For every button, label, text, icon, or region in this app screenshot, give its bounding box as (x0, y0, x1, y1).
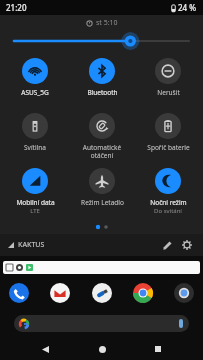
staticText: Režim Letadlo (81, 198, 124, 207)
button[interactable]: Mobilní data (4, 165, 66, 215)
staticText: LTE (30, 207, 40, 215)
button[interactable]: Chrome (132, 282, 154, 304)
button[interactable]: Edit tiles (159, 237, 175, 253)
staticText: Automatické otáčení (71, 143, 133, 160)
staticText: st 5:10 (96, 18, 118, 28)
button[interactable]: Bluetooth (71, 55, 133, 97)
staticText: Mobilní data (16, 198, 55, 207)
staticText: Svítilna (24, 143, 46, 152)
button[interactable]: Brightness (14, 31, 189, 51)
staticText: Noční režim (150, 198, 187, 207)
button[interactable]: Home (90, 338, 114, 360)
staticText: KAKTUS (18, 240, 45, 250)
staticText: ASUS_5G (21, 88, 49, 97)
button[interactable]: Back (33, 338, 57, 360)
button[interactable]: Noční režim (137, 165, 199, 215)
staticText: 24 % (178, 2, 197, 13)
button[interactable]: Automatické otáčení (71, 110, 133, 160)
button[interactable]: Spořič baterie (137, 110, 199, 152)
button[interactable]: Phone (8, 282, 30, 304)
staticText: Spořič baterie (147, 143, 190, 152)
staticText: 21:20 (6, 2, 27, 13)
button[interactable]: Nerušit (137, 55, 199, 97)
button[interactable]: Camera (173, 282, 195, 304)
button[interactable]: Settings (179, 237, 195, 253)
staticText: Do svítání (154, 207, 182, 215)
button[interactable]: Recents (146, 338, 170, 360)
staticText: Bluetooth (87, 88, 118, 97)
button[interactable]: Photos (91, 282, 113, 304)
button[interactable]: Svítilna (4, 110, 66, 152)
button[interactable]: Režim Letadlo (71, 165, 133, 207)
button[interactable]: Widget bar (3, 261, 200, 274)
staticText: Nerušit (157, 88, 180, 97)
button[interactable]: Gmail (49, 282, 71, 304)
button[interactable]: ASUS_5G (4, 55, 66, 97)
button[interactable]: Google search (14, 315, 189, 332)
